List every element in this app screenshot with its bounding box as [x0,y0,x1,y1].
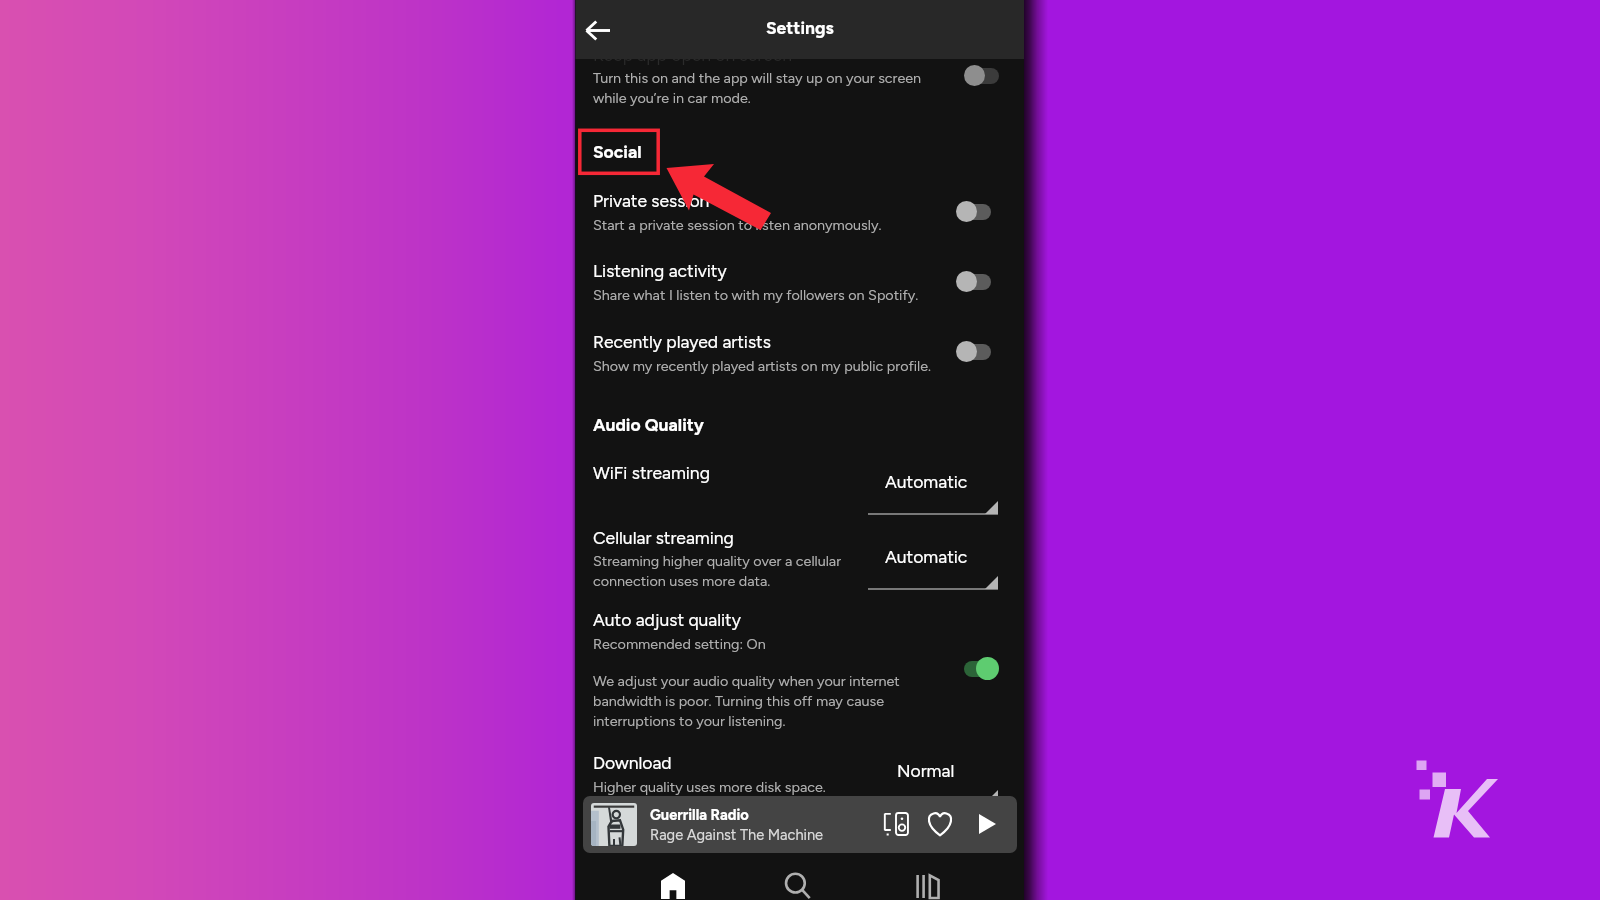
button[interactable]: Auto adjust quality [593,609,1006,729]
button[interactable]: Your Library [901,866,953,900]
staticText: Recommended setting: On [593,817,866,834]
staticText: Guerrilla Radio [650,806,749,824]
staticText: Private session [593,190,710,211]
button[interactable]: Guerrilla Radio [583,796,1017,853]
staticText: WiFi streaming [593,462,710,483]
button[interactable]: Recently played artists [593,331,1006,374]
staticText: Start a private session to listen anonym… [593,216,936,233]
button[interactable]: Toggle off [964,65,999,86]
staticText: We adjust your audio quality when your i… [593,672,936,729]
button[interactable]: Toggle off [956,271,991,292]
staticText: Keep app open on screen [593,44,793,65]
staticText: Automatic [885,546,968,567]
button[interactable]: Automatic [868,546,998,590]
button[interactable]: Listening activity [593,260,1006,303]
button[interactable]: Automatic [868,471,998,515]
button[interactable]: Connect to a device [878,806,914,842]
button[interactable]: Back [576,9,618,51]
button[interactable]: Play [969,806,1005,842]
staticText: Turn this on and the app will stay up on… [593,69,936,106]
staticText: Streaming higher quality over a cellular… [593,552,866,589]
staticText: Recently played artists [593,331,771,352]
button[interactable]: Home [647,866,699,900]
staticText: Listening activity [593,260,727,281]
button[interactable]: Like [922,806,958,842]
staticText: Settings [766,17,834,38]
staticText: Normal [897,760,955,781]
staticText: Share what I listen to with my followers… [593,286,936,303]
staticText: Higher quality uses more disk space. [593,778,866,795]
button[interactable]: Toggle off [956,341,991,362]
button[interactable]: Cellular streaming [593,527,1006,589]
button[interactable]: WiFi streaming [593,462,1006,483]
button[interactable]: Toggle on [964,657,999,680]
staticText: Social [593,141,642,162]
staticText: Audio Quality [593,414,704,435]
button[interactable]: Search [772,866,824,900]
button[interactable]: Toggle off [956,201,991,222]
button[interactable]: Private session [593,190,1006,233]
staticText: Automatic [885,471,968,492]
staticText: Show my recently played artists on my pu… [593,357,936,374]
staticText: Rage Against The Machine [650,826,824,844]
staticText: Recommended setting: On [593,635,936,652]
button[interactable]: Download [593,752,1006,834]
staticText: Cellular streaming [593,527,734,548]
staticText: Auto adjust quality [593,609,741,630]
button[interactable]: Normal [868,760,998,804]
staticText: Download [593,752,672,773]
